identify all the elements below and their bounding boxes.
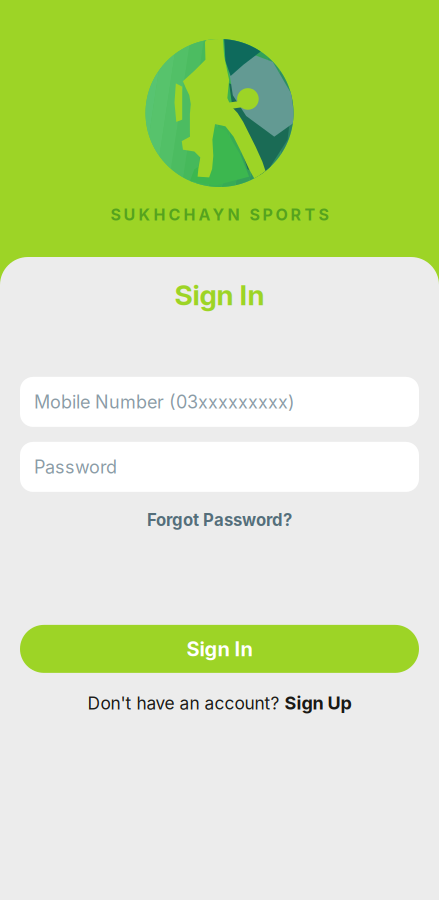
button[interactable]: Forgot Password? (147, 507, 292, 533)
staticText: Don't have an account? Sign Up (87, 692, 351, 713)
staticText: SUKHCHAYN SPORTS (110, 205, 328, 224)
staticText: Forgot Password? (147, 510, 292, 530)
staticText: Sign In (174, 278, 264, 312)
staticText: Password (34, 456, 117, 478)
staticText: Sign In (186, 637, 252, 661)
staticText: Mobile Number (03xxxxxxxxx) (34, 391, 295, 413)
button[interactable]: Don't have an account? Sign Up (87, 690, 351, 716)
button[interactable]: Sign In (20, 625, 419, 673)
